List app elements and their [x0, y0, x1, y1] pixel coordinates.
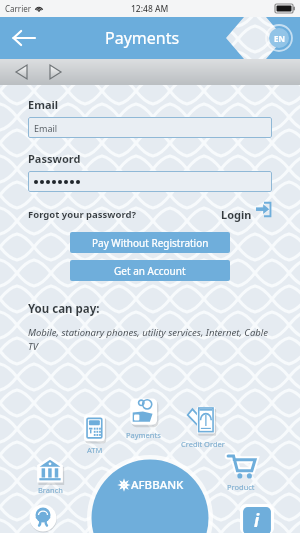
staticText: Branch [38, 485, 63, 495]
button[interactable]: Pay Without Registration [70, 232, 230, 253]
staticText: ATM [87, 445, 103, 455]
staticText: AFBBANK [131, 477, 184, 493]
button[interactable]: Forgot your password? [28, 208, 136, 221]
staticText: Get an Account [114, 264, 186, 278]
staticText: Payments [105, 27, 180, 49]
staticText: Email [34, 122, 58, 134]
button[interactable]: ATM [80, 414, 110, 455]
staticText: Password [28, 151, 81, 166]
button[interactable]: Credit Order [181, 406, 225, 449]
staticText: Mobile, stationary phones, utility servi… [28, 326, 272, 353]
button[interactable]: Payments [126, 397, 161, 440]
staticText: Carrier [5, 3, 32, 14]
button[interactable]: Email [28, 117, 272, 138]
staticText: Product [227, 482, 255, 492]
staticText: Login [221, 207, 252, 222]
button[interactable]: Insurance [28, 503, 58, 533]
button[interactable]: Navigate back [6, 60, 36, 84]
button[interactable] [28, 171, 272, 192]
button[interactable]: Navigate forward [40, 60, 70, 84]
button[interactable]: Login [221, 206, 272, 223]
staticText: You can pay: [28, 301, 100, 317]
staticText: Forgot your password? [28, 208, 136, 221]
staticText: Credit Order [181, 439, 225, 449]
button[interactable]: Language EN [265, 24, 293, 52]
staticText: i [254, 509, 260, 532]
button[interactable]: Product [226, 451, 256, 492]
staticText: Email [28, 97, 59, 112]
staticText: 12:48 AM [131, 3, 169, 15]
button[interactable]: Get an Account [70, 260, 230, 281]
staticText: Pay Without Registration [92, 236, 209, 250]
staticText: EN [274, 33, 285, 44]
button[interactable]: AFBBANK home [87, 455, 213, 533]
button[interactable]: Info [240, 504, 274, 533]
staticText: Payments [126, 430, 161, 440]
button[interactable]: Branch [36, 456, 64, 495]
button[interactable]: Back [6, 20, 42, 56]
